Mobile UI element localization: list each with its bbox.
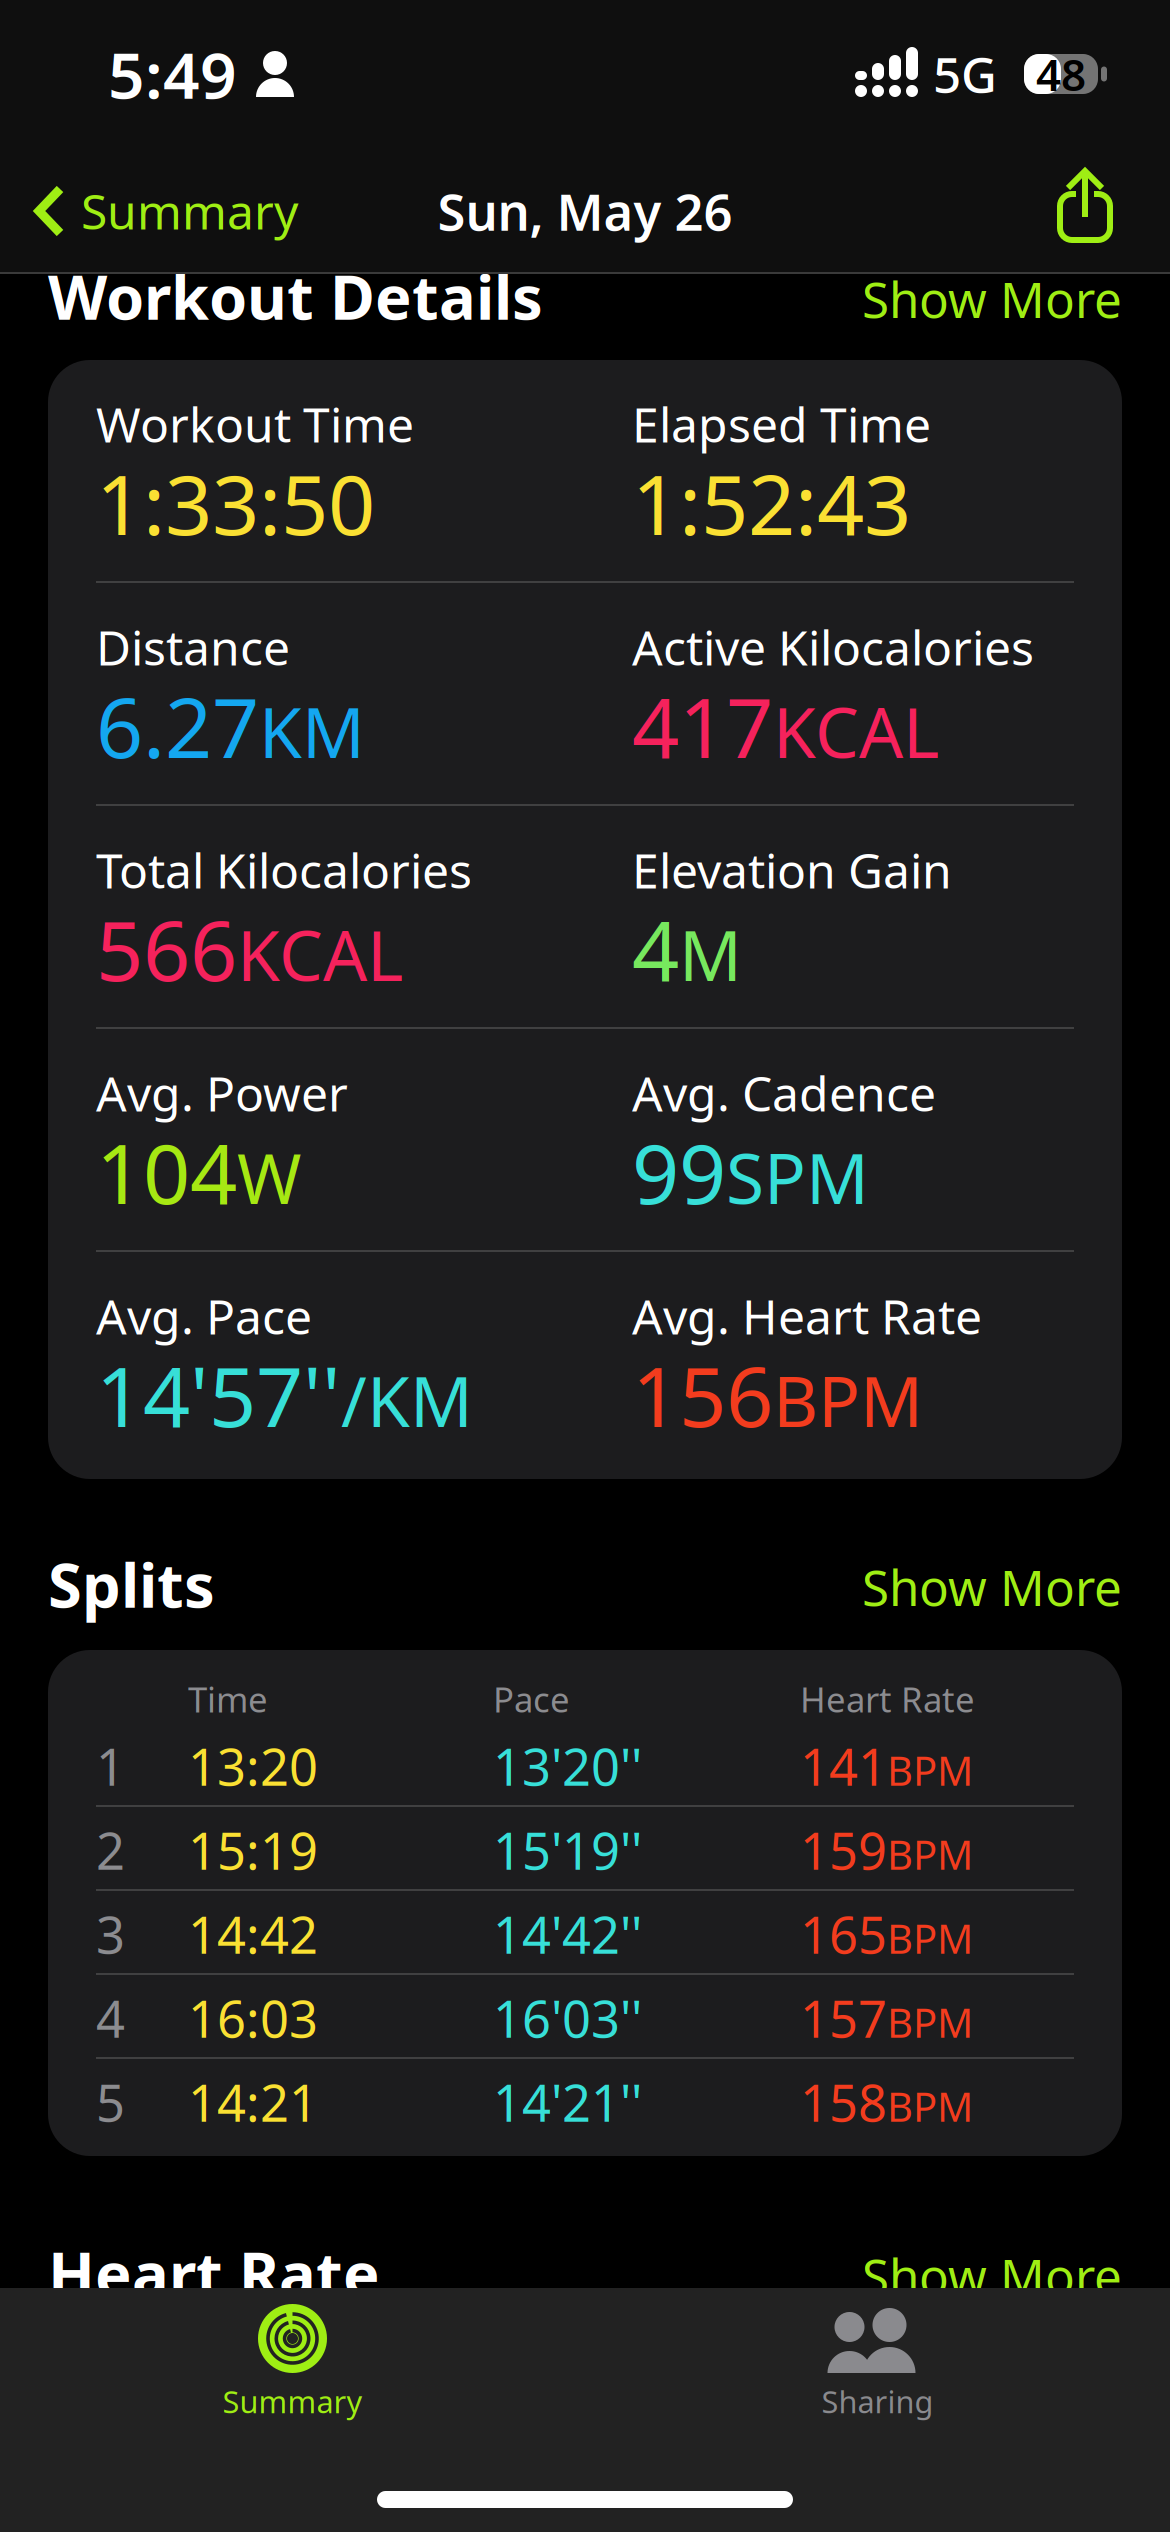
staticText: 48 <box>1036 45 1086 103</box>
staticText: Elevation Gain <box>632 838 952 902</box>
staticText: Elapsed Time <box>632 392 931 456</box>
staticText: 99 <box>632 1117 726 1227</box>
staticText: Show More <box>862 1554 1122 1620</box>
staticText: BPM <box>887 1744 973 1797</box>
button[interactable]: Show More <box>862 2245 1122 2307</box>
staticText: 165 <box>800 1900 887 1968</box>
staticText: 14'57'' <box>96 1340 341 1450</box>
staticText: Pace <box>493 1676 570 1722</box>
button[interactable]: Show More <box>862 1556 1122 1618</box>
staticText: Active Kilocalories <box>632 615 1034 679</box>
staticText: 158 <box>800 2068 887 2136</box>
staticText: Sun, May 26 <box>437 177 732 245</box>
staticText: KCAL <box>773 685 939 777</box>
staticText: BPM <box>887 1996 973 2049</box>
staticText: 14:42 <box>188 1900 318 1968</box>
staticText: 13:20 <box>188 1732 318 1800</box>
staticText: 4 <box>96 1984 125 2052</box>
staticText: 2 <box>96 1816 125 1884</box>
staticText: 1:33:50 <box>96 448 375 558</box>
staticText: 15'19'' <box>493 1816 642 1884</box>
staticText: 157 <box>800 1984 887 2052</box>
staticText: BPM <box>887 1912 973 1965</box>
staticText: Summary <box>222 2381 362 2422</box>
staticText: 5:49 <box>108 31 237 116</box>
button[interactable]: Show More <box>862 268 1122 330</box>
staticText: KCAL <box>237 908 403 1000</box>
staticText: Workout Time <box>96 392 414 456</box>
staticText: 16:03 <box>188 1984 318 2052</box>
staticText: Show More <box>862 266 1122 332</box>
staticText: Total Kilocalories <box>96 838 472 902</box>
staticText: 4 <box>632 894 679 1004</box>
staticText: 156 <box>632 1340 773 1450</box>
staticText: /KM <box>341 1354 473 1446</box>
staticText: 141 <box>800 1732 887 1800</box>
staticText: Summary <box>81 179 298 243</box>
staticText: BPM <box>887 2080 973 2133</box>
button[interactable]: Summary <box>0 2288 585 2422</box>
staticText: 3 <box>96 1900 125 1968</box>
staticText: 417 <box>632 671 773 781</box>
staticText: Workout Details <box>48 255 543 337</box>
staticText: M <box>679 908 742 1000</box>
staticText: Avg. Pace <box>96 1284 312 1348</box>
staticText: 14'42'' <box>493 1900 642 1968</box>
staticText: 5 <box>96 2068 125 2136</box>
button[interactable]: Share <box>1031 152 1170 270</box>
staticText: 14:21 <box>188 2068 318 2136</box>
button[interactable]: Sharing <box>585 2288 1170 2422</box>
staticText: Show More <box>862 2243 1122 2309</box>
staticText: Heart Rate <box>800 1676 975 1722</box>
staticText: Distance <box>96 615 290 679</box>
staticText: 5G <box>933 41 997 107</box>
staticText: Splits <box>48 1543 215 1625</box>
staticText: W <box>237 1131 301 1223</box>
staticText: Avg. Cadence <box>632 1061 936 1125</box>
staticText: SPM <box>726 1131 869 1223</box>
staticText: Sharing <box>821 2381 933 2422</box>
button[interactable]: Summary <box>0 152 318 270</box>
staticText: 566 <box>96 894 237 1004</box>
staticText: Time <box>188 1676 268 1722</box>
staticText: 1:52:43 <box>632 448 911 558</box>
staticText: Heart Rate <box>48 2232 380 2314</box>
staticText: KM <box>259 685 365 777</box>
staticText: Avg. Heart Rate <box>632 1284 982 1348</box>
staticText: 6.27 <box>96 671 259 781</box>
staticText: 104 <box>96 1117 237 1227</box>
staticText: 1 <box>96 1732 125 1800</box>
staticText: BPM <box>887 1828 973 1881</box>
staticText: 159 <box>800 1816 887 1884</box>
staticText: 14'21'' <box>493 2068 642 2136</box>
staticText: BPM <box>773 1354 923 1446</box>
staticText: 15:19 <box>188 1816 318 1884</box>
staticText: Avg. Power <box>96 1061 348 1125</box>
staticText: 13'20'' <box>493 1732 642 1800</box>
staticText: 16'03'' <box>493 1984 642 2052</box>
